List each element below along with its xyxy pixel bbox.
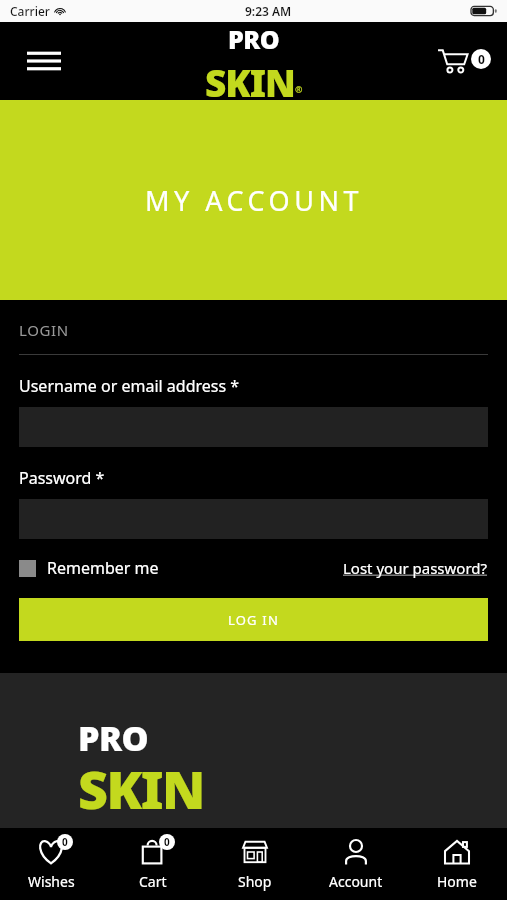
- staticText: 0: [164, 835, 170, 849]
- staticText: Password *: [19, 467, 105, 489]
- staticText: Account: [329, 872, 383, 891]
- staticText: Wishes: [28, 872, 75, 891]
- button[interactable]: Home: [406, 828, 507, 900]
- staticText: Remember me: [47, 557, 159, 579]
- button[interactable]: Menu: [20, 37, 68, 85]
- staticText: PRO: [78, 715, 149, 761]
- button[interactable]: LOG IN: [19, 598, 488, 641]
- staticText: 0: [478, 51, 485, 67]
- staticText: LOG IN: [228, 611, 280, 629]
- button[interactable]: Shop: [204, 828, 305, 900]
- staticText: Username or email address *: [19, 375, 240, 397]
- button[interactable]: 0: [102, 828, 204, 900]
- staticText: LOGIN: [19, 320, 69, 340]
- button[interactable]: Lost your password?: [343, 558, 488, 578]
- staticText: Shop: [238, 872, 272, 891]
- staticText: Cart: [139, 872, 167, 891]
- staticText: Carrier: [10, 3, 50, 19]
- staticText: 0: [62, 835, 68, 849]
- button[interactable]: 0: [0, 828, 102, 900]
- staticText: PRO: [228, 22, 280, 56]
- button[interactable]: Remember me: [19, 557, 159, 579]
- staticText: ®: [295, 83, 303, 95]
- staticText: SKIN: [205, 57, 295, 100]
- staticText: MY ACCOUNT: [145, 182, 363, 219]
- staticText: 9:23 AM: [245, 3, 292, 19]
- button[interactable]: Cart: [437, 37, 491, 85]
- staticText: Lost your password?: [343, 558, 488, 578]
- staticText: Home: [437, 872, 477, 891]
- staticText: SKIN: [78, 753, 204, 820]
- button[interactable]: Account: [305, 828, 406, 900]
